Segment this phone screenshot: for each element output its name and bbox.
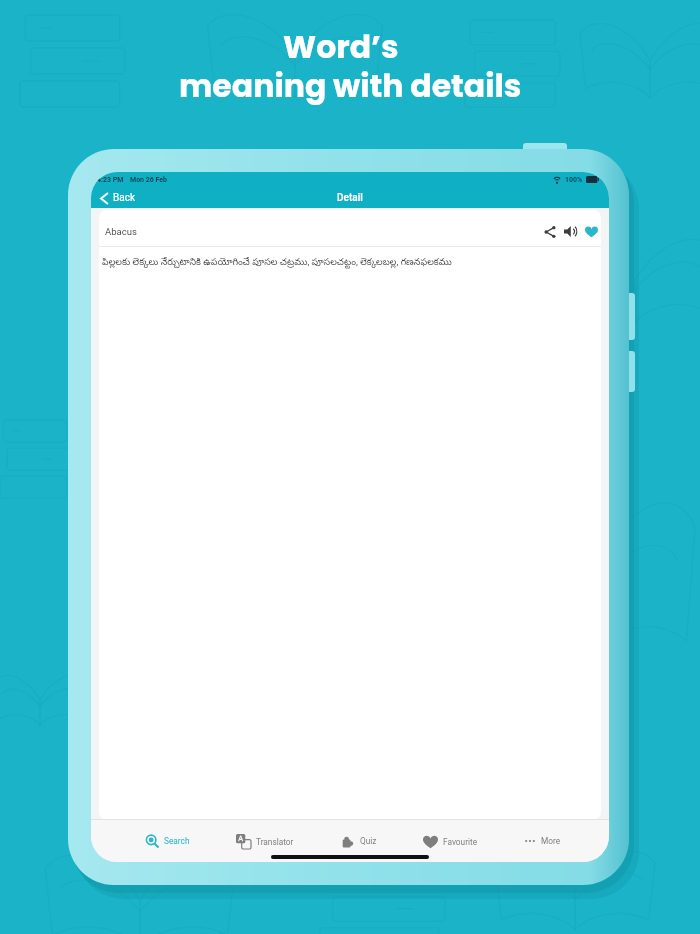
button[interactable]: Quiz — [341, 834, 377, 848]
staticText: meaning with details — [179, 64, 522, 108]
staticText: Abacus — [105, 226, 137, 237]
staticText: Quiz — [360, 836, 377, 846]
staticText: Mon 26 Feb — [130, 176, 168, 184]
button[interactable]: More — [524, 835, 561, 847]
button[interactable]: Translator — [236, 834, 294, 849]
staticText: Back — [113, 192, 135, 204]
staticText: Detail — [337, 192, 363, 204]
button[interactable]: Search — [145, 834, 190, 848]
staticText: 4:23 PM — [97, 176, 124, 184]
button[interactable]: Favourite — [423, 834, 478, 849]
staticText: Translator — [256, 837, 294, 847]
button[interactable]: Back — [101, 192, 135, 204]
staticText: More — [541, 836, 561, 846]
staticText: Search — [164, 836, 190, 846]
staticText: Word’s — [283, 25, 399, 69]
staticText: 100% — [565, 176, 583, 184]
button[interactable] — [544, 226, 556, 238]
staticText: పిల్లలకు లెక్కలు నేర్చుటానికి ఉపయోగించే … — [102, 256, 452, 269]
button[interactable] — [585, 225, 598, 238]
button[interactable] — [564, 225, 577, 238]
staticText: Favourite — [443, 837, 478, 847]
